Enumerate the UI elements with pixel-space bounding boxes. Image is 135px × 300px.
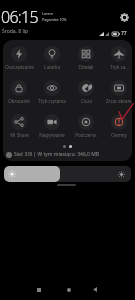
staticText: Obracanie: [8, 98, 30, 104]
button[interactable]: Latarka: [36, 46, 68, 70]
button[interactable]: Tryb sa...: [103, 46, 132, 70]
staticText: Dźwięk: [78, 64, 94, 70]
staticText: 77: [121, 30, 127, 37]
button[interactable]: Home: [62, 283, 75, 296]
button[interactable]: Settings: [118, 11, 130, 23]
button[interactable]: Dźwięk: [70, 46, 102, 70]
staticText: Latarka: [44, 64, 60, 70]
staticText: Tryb sa...: [110, 64, 129, 70]
staticText: Lorem: [42, 11, 53, 16]
staticText: Mi Share: [10, 132, 29, 138]
staticText: Nagrywanie: [39, 132, 65, 138]
staticText: Oszczędzanie: [5, 64, 34, 70]
button[interactable]: Tryb czytania: [36, 80, 68, 104]
button[interactable]: Back: [88, 283, 101, 296]
button[interactable]: Cisza: [70, 80, 102, 104]
staticText: Środa, 8 lip: [2, 28, 29, 35]
button[interactable]: Oszczędzanie: [3, 46, 35, 70]
button[interactable]: Recent apps: [32, 283, 45, 296]
staticText: Zrzut ekranu: [106, 98, 132, 104]
button[interactable]: Mi Share: [3, 114, 35, 138]
button[interactable]: Podczerw.: [70, 114, 102, 138]
staticText: Ciemny: [111, 132, 127, 138]
button[interactable]: Ciemny: [103, 114, 132, 138]
staticText: Sieć 3/8 | W tym miesiącu: 346,0 MB: [14, 151, 100, 158]
staticText: Pagamlse 10%: [42, 17, 67, 22]
button[interactable]: [4, 166, 131, 182]
button[interactable]: Zrzut ekranu: [103, 80, 132, 104]
button[interactable]: Obracanie: [3, 80, 35, 104]
staticText: Cisza: [81, 98, 92, 104]
staticText: 06:15: [1, 6, 38, 28]
staticText: Tryb czytania: [38, 98, 66, 104]
staticText: Podczerw.: [75, 132, 97, 138]
button[interactable]: Nagrywanie: [36, 114, 68, 138]
